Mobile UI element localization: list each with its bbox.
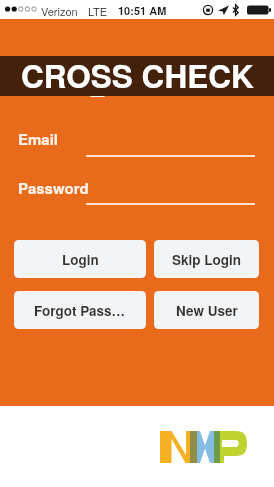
staticText: LTE [88,3,108,19]
staticText: Skip Login [172,250,242,269]
staticText: Verizon [41,3,78,19]
staticText: 10:51 AM [118,3,167,19]
staticText: Password [18,177,89,198]
staticText: Email [18,128,59,149]
button[interactable]: Skip Login [154,240,259,278]
button[interactable]: Forgot Pass… [14,291,146,329]
button[interactable]: Login [14,240,146,278]
staticText: Forgot Pass… [34,301,126,320]
staticText: New User [176,301,238,320]
staticText: Login [62,250,99,269]
staticText: CROSS CHECK [21,53,254,93]
button[interactable]: New User [154,291,259,329]
